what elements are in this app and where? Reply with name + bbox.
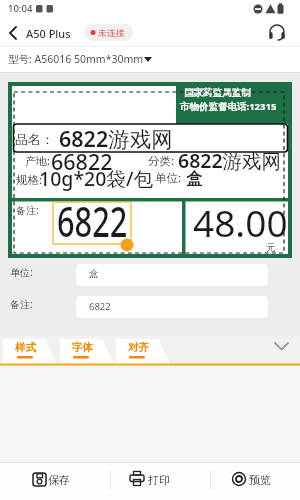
button[interactable]: 保存 — [10, 463, 100, 499]
staticText: 市物价监督电话:12315 — [180, 100, 277, 113]
button[interactable]: 对齐 — [117, 339, 169, 364]
staticText: 66822 — [51, 147, 113, 176]
staticText: 48.00 — [193, 197, 288, 247]
button[interactable] — [0, 20, 26, 46]
staticText: 盒 — [186, 169, 202, 189]
staticText: 产地: — [25, 153, 50, 168]
staticText: 6822游戏网 — [59, 124, 173, 153]
staticText: 规格: — [16, 172, 43, 188]
button[interactable]: 6822 — [76, 296, 268, 318]
staticText: 型号: A56016 50mm*30mm — [8, 52, 144, 66]
staticText: 国家药监局监制 — [184, 87, 251, 99]
staticText: 10g*20袋/包 — [39, 165, 153, 192]
staticText: 品名： — [15, 131, 54, 147]
staticText: 字体 — [72, 341, 93, 354]
staticText: 6822 — [89, 300, 111, 313]
staticText: 分类: — [148, 153, 175, 169]
staticText: 打印 — [148, 473, 170, 487]
button[interactable]: 盒 — [76, 264, 268, 286]
staticText: 保存 — [48, 473, 70, 487]
button[interactable]: 预览 — [212, 463, 300, 499]
button[interactable]: 字体 — [61, 339, 113, 364]
staticText: 10:04 — [8, 2, 33, 15]
staticText: 未连接 — [98, 27, 125, 38]
staticText: 样式 — [15, 341, 36, 354]
staticText: 单位: — [155, 170, 182, 186]
button[interactable]: 打印 — [110, 463, 200, 499]
button[interactable]: 未连接 — [84, 24, 133, 41]
staticText: 元 — [266, 241, 276, 254]
staticText: 盒 — [89, 268, 99, 280]
button[interactable]: 型号: A56016 50mm*30mm — [0, 47, 300, 72]
staticText: 预览 — [249, 473, 271, 487]
staticText: 备注: — [16, 203, 39, 217]
staticText: 备注: — [10, 297, 33, 311]
button[interactable] — [266, 22, 290, 44]
staticText: A50 Plus — [26, 26, 71, 41]
staticText: 对齐 — [128, 341, 149, 354]
staticText: 单位: — [10, 265, 33, 279]
staticText: 6822游戏网 — [178, 147, 282, 174]
button[interactable]: 样式 — [4, 339, 56, 364]
staticText: 6822 — [57, 193, 127, 249]
